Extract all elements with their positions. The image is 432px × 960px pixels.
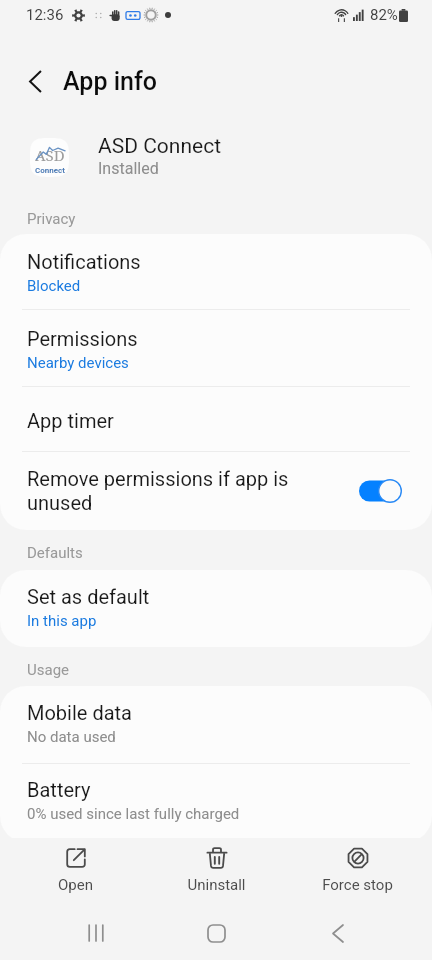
staticText: App timer (27, 409, 114, 432)
staticText: Nearby devices (27, 354, 129, 372)
button[interactable]: Uninstall (146, 838, 287, 906)
staticText: Set as default (27, 585, 150, 608)
staticText: Defaults (27, 544, 83, 562)
button[interactable]: Open (5, 838, 146, 906)
button[interactable]: Remove permissions if app is unused (0, 452, 432, 530)
button[interactable]: Home (156, 906, 277, 960)
staticText: Mobile data (27, 701, 132, 724)
staticText: Force stop (322, 876, 393, 894)
staticText: Battery (27, 778, 91, 801)
staticText: In this app (27, 612, 97, 630)
button[interactable]: Back (277, 906, 398, 960)
staticText: No data used (27, 728, 116, 746)
staticText: 82% (370, 6, 398, 24)
button[interactable]: App timer (0, 387, 432, 451)
staticText: ASD (35, 145, 65, 165)
staticText: Remove permissions if app is unused (27, 467, 329, 515)
staticText: Usage (27, 661, 70, 679)
staticText: 12:36 (26, 6, 64, 24)
button[interactable]: Permissions (0, 310, 432, 386)
staticText: Blocked (27, 277, 81, 295)
staticText: Installed (98, 159, 159, 178)
staticText: Connect (35, 166, 65, 175)
staticText: Privacy (27, 210, 76, 228)
button[interactable]: Notifications (0, 234, 432, 309)
staticText: Open (58, 876, 93, 894)
button[interactable]: Navigate up (18, 62, 52, 96)
staticText: 0% used since last fully charged (27, 805, 240, 823)
button[interactable]: Recent apps (35, 906, 156, 960)
staticText: Notifications (27, 250, 141, 273)
button[interactable]: Force stop (287, 838, 428, 906)
staticText: ASD Connect (98, 134, 221, 159)
button[interactable]: Set as default (0, 570, 432, 647)
button[interactable]: Battery (0, 764, 432, 842)
button[interactable]: Mobile data (0, 686, 432, 763)
staticText: Permissions (27, 327, 138, 350)
staticText: App info (63, 67, 157, 96)
staticText: Uninstall (187, 876, 246, 894)
